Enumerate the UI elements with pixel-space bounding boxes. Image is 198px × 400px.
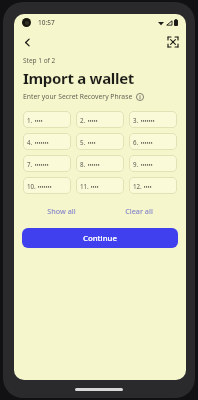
button[interactable]: 8. [76, 155, 124, 172]
button[interactable]: 11. [76, 177, 124, 194]
button[interactable]: Show all [41, 203, 82, 219]
button[interactable]: 7. [23, 155, 71, 172]
button[interactable]: 10. [23, 177, 71, 194]
button[interactable]: 12. [129, 177, 177, 194]
button[interactable]: 4. [23, 133, 71, 150]
button[interactable]: 1. [23, 111, 71, 128]
staticText: Import a wallet [23, 68, 135, 88]
button[interactable]: 3. [129, 111, 177, 128]
button[interactable]: 5. [76, 133, 124, 150]
button[interactable]: 2. [76, 111, 124, 128]
button[interactable]: Clear all [119, 203, 159, 219]
button[interactable]: Scan QR code [165, 34, 181, 50]
staticText: 6. [133, 138, 139, 146]
staticText: 9. [133, 160, 139, 168]
button[interactable]: 6. [129, 133, 177, 150]
button[interactable]: Continue [22, 228, 178, 248]
staticText: 4. [27, 138, 33, 146]
staticText: 8. [80, 160, 86, 168]
button[interactable]: Back [19, 34, 35, 50]
staticText: 5. [80, 138, 86, 146]
staticText: 1. [27, 116, 33, 124]
staticText: 11. [80, 182, 89, 190]
staticText: 10:57 [38, 18, 55, 27]
button[interactable]: 9. [129, 155, 177, 172]
staticText: 10. [27, 182, 36, 190]
staticText: Show all [47, 206, 76, 216]
staticText: Continue [83, 233, 117, 244]
staticText: 7. [27, 160, 33, 168]
staticText: Clear all [125, 206, 153, 216]
staticText: Step 1 of 2 [23, 56, 56, 65]
staticText: 2. [80, 116, 86, 124]
button[interactable]: Secret Recovery Phrase info [136, 93, 144, 101]
staticText: 3. [133, 116, 139, 124]
staticText: Enter your Secret Recovery Phrase [23, 92, 133, 101]
staticText: 12. [133, 182, 142, 190]
